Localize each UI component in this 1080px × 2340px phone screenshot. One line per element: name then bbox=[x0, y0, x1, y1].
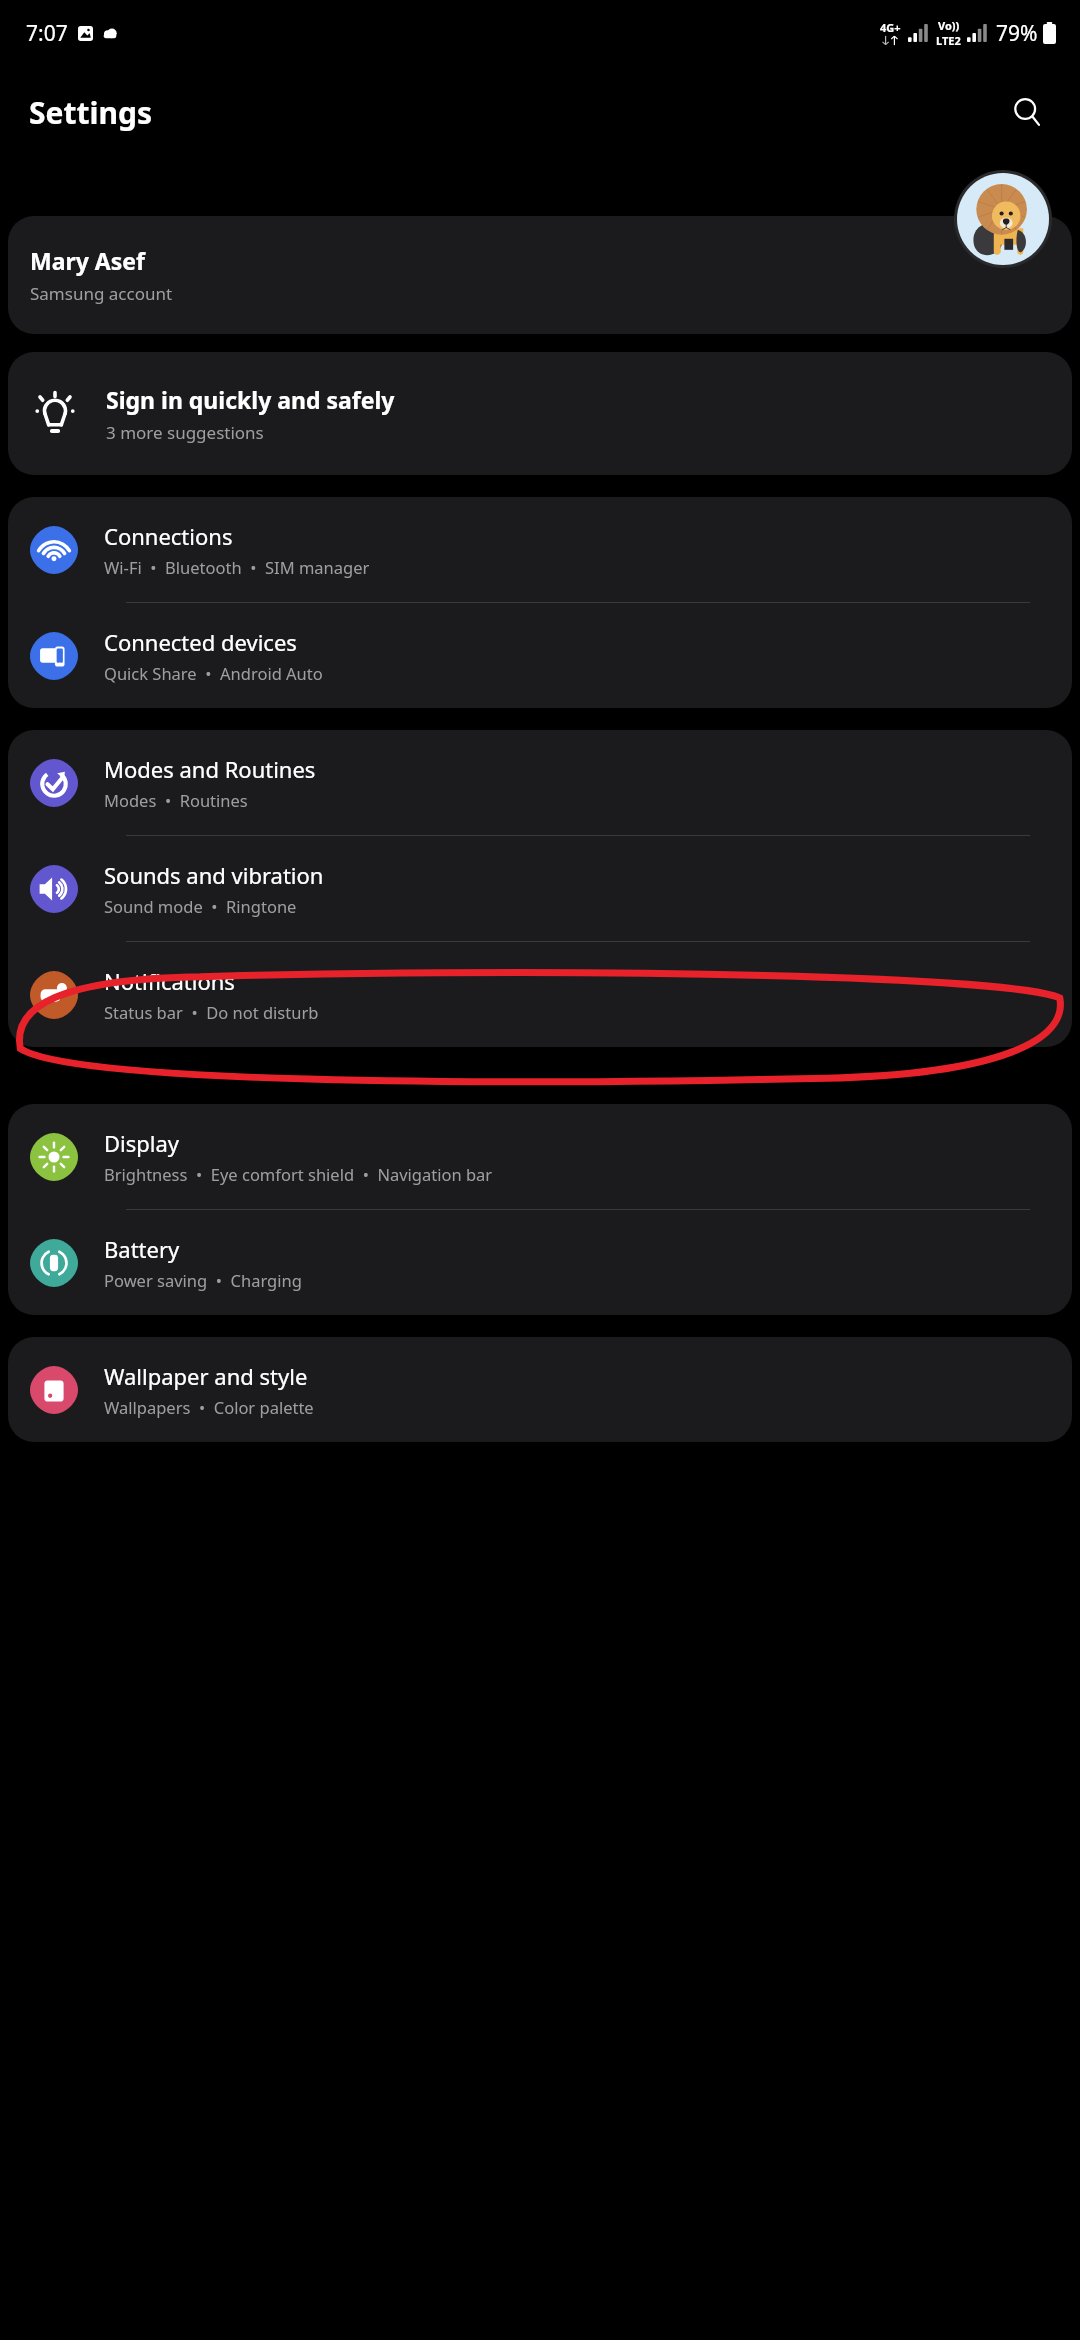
button[interactable]: Profile picture bbox=[954, 170, 1052, 268]
button[interactable]: Mary Asef bbox=[8, 216, 1072, 334]
staticText: Wallpapers • Color palette bbox=[104, 1396, 314, 1418]
staticText: 7:07 bbox=[26, 19, 68, 48]
staticText: Power saving • Charging bbox=[104, 1269, 302, 1291]
staticText: Brightness • Eye comfort shield • Naviga… bbox=[104, 1163, 493, 1185]
button[interactable]: Sign in quickly and safely bbox=[8, 352, 1072, 475]
staticText: LTE2 bbox=[936, 33, 961, 48]
button[interactable]: Notifications bbox=[8, 942, 1072, 1047]
button[interactable]: Wallpaper and style bbox=[8, 1337, 1072, 1442]
staticText: Sounds and vibration bbox=[104, 860, 324, 890]
staticText: 79% bbox=[996, 19, 1038, 48]
staticText: Display bbox=[104, 1128, 180, 1158]
staticText: Vo)) bbox=[938, 18, 960, 33]
button[interactable]: Connections bbox=[8, 497, 1072, 602]
staticText: Notifications bbox=[104, 966, 235, 996]
staticText: Modes and Routines bbox=[104, 754, 316, 784]
button[interactable]: Sounds and vibration bbox=[8, 836, 1072, 941]
button[interactable]: Battery bbox=[8, 1210, 1072, 1315]
staticText: 4G+ bbox=[880, 20, 901, 35]
staticText: Sound mode • Ringtone bbox=[104, 895, 297, 917]
staticText: Connections bbox=[104, 521, 233, 551]
button[interactable]: Display bbox=[8, 1104, 1072, 1209]
staticText: 3 more suggestions bbox=[106, 421, 264, 444]
button[interactable]: Search bbox=[1002, 87, 1052, 137]
staticText: Mary Asef bbox=[30, 245, 145, 276]
staticText: Wi-Fi • Bluetooth • SIM manager bbox=[104, 556, 370, 578]
staticText: Sign in quickly and safely bbox=[106, 384, 395, 415]
button[interactable]: Connected devices bbox=[8, 603, 1072, 708]
staticText: Wallpaper and style bbox=[104, 1361, 308, 1391]
staticText: Modes • Routines bbox=[104, 789, 248, 811]
staticText: Quick Share • Android Auto bbox=[104, 662, 323, 684]
staticText: Connected devices bbox=[104, 627, 297, 657]
staticText: Settings bbox=[29, 92, 152, 133]
staticText: Battery bbox=[104, 1234, 180, 1264]
staticText: Status bar • Do not disturb bbox=[104, 1001, 319, 1023]
button[interactable]: Modes and Routines bbox=[8, 730, 1072, 835]
staticText: Samsung account bbox=[30, 282, 173, 305]
